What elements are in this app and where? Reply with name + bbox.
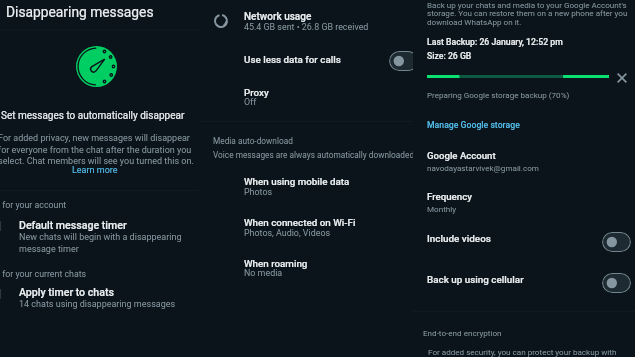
other: Network usage <box>214 14 228 28</box>
staticText: For added privacy, new messages will dis… <box>0 133 197 166</box>
staticText: Photos <box>244 187 273 197</box>
staticText: Disappearing messages <box>6 4 154 20</box>
staticText: Back up your chats and media to your Goo… <box>427 0 630 27</box>
button[interactable] <box>199 213 413 247</box>
staticText: Back up using cellular <box>427 274 524 286</box>
staticText: Proxy <box>244 87 269 98</box>
staticText: Off <box>244 97 257 107</box>
staticText: End-to-end encryption <box>423 328 502 337</box>
staticText: Set messages to automatically disappear <box>1 110 185 122</box>
button[interactable]: Use less data for calls <box>389 51 413 71</box>
staticText: 45.4 GB sent • 26.8 GB received <box>244 22 369 32</box>
staticText: navodayastarvivek@gmail.com <box>427 163 539 172</box>
button[interactable] <box>413 187 635 219</box>
staticText: Apply timer to chats <box>19 286 114 298</box>
button[interactable] <box>199 4 413 40</box>
staticText: For added security, you can protect your… <box>428 347 617 356</box>
staticText: Network usage <box>244 11 312 23</box>
button[interactable] <box>199 253 413 287</box>
staticText: When connected on Wi-Fi <box>244 217 356 228</box>
button[interactable] <box>0 284 199 322</box>
staticText: Photos, Audio, Videos <box>244 228 331 238</box>
button[interactable] <box>413 145 635 177</box>
button[interactable]: Cancel backup <box>615 71 629 85</box>
staticText: Last Backup: 26 January, 12:52 pm <box>427 37 563 47</box>
staticText: Media auto-download <box>213 136 293 146</box>
staticText: 14 chats using disappearing messages <box>19 299 176 310</box>
button[interactable]: Include videos <box>602 232 631 252</box>
staticText: New chats will begin with a disappearing… <box>19 232 194 254</box>
button[interactable] <box>413 226 635 260</box>
staticText: When using mobile data <box>244 176 350 187</box>
button[interactable]: Back up using cellular <box>602 273 631 293</box>
staticText: Voice messages are always automatically … <box>213 150 413 160</box>
staticText: Default message timer <box>19 219 127 231</box>
staticText: Monthly <box>427 204 457 213</box>
staticText: Size: 26 GB <box>427 51 472 61</box>
staticText: Use less data for calls <box>244 54 341 65</box>
staticText: Frequency <box>427 191 472 202</box>
staticText: Include videos <box>427 233 491 245</box>
staticText: Learn more <box>72 165 118 176</box>
button[interactable] <box>413 266 635 300</box>
button[interactable] <box>0 216 199 264</box>
staticText: r for your current chats <box>0 269 87 279</box>
button[interactable] <box>199 172 413 206</box>
staticText: Manage Google storage <box>427 120 520 130</box>
staticText: When roaming <box>244 258 308 269</box>
button[interactable] <box>413 114 635 138</box>
staticText: No media <box>244 268 283 278</box>
button[interactable] <box>199 82 413 116</box>
staticText: r for your account <box>0 200 67 210</box>
staticText: Google Account <box>427 150 496 161</box>
staticText: Preparing Google storage backup (70%) <box>427 90 570 99</box>
button[interactable] <box>199 46 413 78</box>
